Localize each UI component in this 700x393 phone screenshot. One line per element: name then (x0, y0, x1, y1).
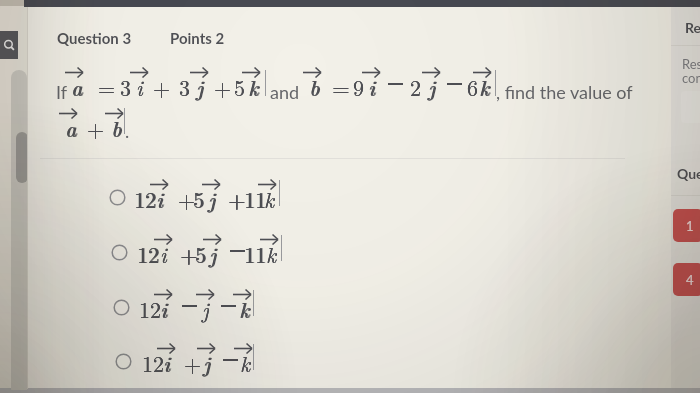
staticText: j (197, 71, 204, 102)
staticText: k (239, 293, 250, 324)
staticText: = (333, 71, 351, 102)
staticText: 11 (244, 238, 267, 269)
staticText: i (160, 293, 167, 324)
staticText: j (202, 293, 209, 324)
staticText: k (266, 238, 277, 269)
staticText: k (264, 183, 275, 214)
staticText: + (228, 183, 246, 214)
button[interactable] (111, 345, 267, 377)
staticText: a (65, 112, 77, 143)
staticText: 12 (142, 347, 165, 378)
staticText: 5 (234, 71, 246, 102)
staticText: a (71, 71, 83, 102)
staticText: 5 (234, 71, 246, 102)
staticText: b (309, 71, 320, 102)
staticText: 6 (467, 71, 479, 102)
staticText: + (214, 71, 232, 102)
staticText: j (210, 238, 217, 269)
staticText: b (310, 71, 321, 102)
staticText: 6 (467, 71, 479, 102)
staticText: a (65, 112, 77, 143)
staticText: 12 (137, 238, 160, 269)
staticText: 12 (135, 183, 158, 214)
staticText: a (72, 71, 84, 102)
staticText: 12 (139, 293, 162, 324)
staticText: j (209, 238, 216, 269)
staticText: k (479, 71, 490, 102)
staticText: i (163, 347, 170, 378)
staticText: j (203, 347, 210, 378)
staticText: = (98, 71, 116, 102)
button[interactable]: Search (0, 31, 18, 59)
staticText: Que (677, 165, 700, 182)
staticText: k (264, 183, 275, 214)
staticText: Question 3 (57, 29, 132, 47)
staticText: + (214, 71, 232, 102)
staticText: + (153, 71, 171, 102)
staticText: + (87, 112, 105, 143)
staticText: i (156, 183, 163, 214)
staticText: 4 (686, 272, 694, 288)
staticText: + (178, 183, 196, 214)
staticText: j (196, 71, 203, 102)
staticText: 9 (353, 71, 365, 102)
staticText: b (112, 112, 123, 143)
staticText: i (157, 183, 164, 214)
staticText: 2 (410, 71, 422, 102)
staticText: 2 (410, 71, 422, 102)
staticText: 11 (244, 183, 267, 214)
staticText: k (249, 71, 260, 102)
staticText: 2 (410, 71, 422, 102)
staticText: = (98, 71, 116, 102)
staticText: + (228, 183, 246, 214)
staticText: i (368, 71, 375, 102)
staticText: + (87, 112, 105, 143)
button[interactable]: 4 (673, 263, 700, 296)
staticText: 9 (353, 71, 365, 102)
staticText: + (181, 238, 199, 269)
staticText: + (180, 238, 198, 269)
staticText: + (153, 71, 171, 102)
staticText: j (202, 293, 209, 324)
staticText: , find the value of (496, 81, 633, 103)
button[interactable] (109, 291, 267, 323)
staticText: k (248, 71, 259, 102)
staticText: Points 2 (170, 29, 225, 47)
staticText: + (180, 238, 198, 269)
staticText: 12 (138, 238, 161, 269)
staticText: i (164, 347, 171, 378)
staticText: a (71, 71, 83, 102)
staticText: b (111, 112, 122, 143)
staticText: 11 (244, 238, 267, 269)
staticText: k (266, 238, 277, 269)
button[interactable]: 1 (673, 209, 700, 242)
staticText: 12 (139, 293, 162, 324)
staticText: j (208, 183, 215, 214)
staticText: + (178, 183, 196, 214)
staticText: 12 (137, 238, 160, 269)
staticText: 3 (179, 71, 191, 102)
staticText: k (479, 71, 490, 102)
staticText: a (66, 112, 78, 143)
button[interactable] (105, 181, 293, 213)
staticText: + (184, 347, 202, 378)
staticText: i (163, 347, 170, 378)
staticText: k (248, 71, 259, 102)
staticText: b (111, 112, 122, 143)
staticText: + (229, 183, 247, 214)
staticText: 5 (234, 71, 246, 102)
staticText: 3 (120, 71, 132, 102)
staticText: i (160, 293, 167, 324)
staticText: + (214, 71, 232, 102)
staticText: j (196, 71, 203, 102)
staticText: j (203, 347, 210, 378)
staticText: j (204, 347, 211, 378)
staticText: j (208, 183, 215, 214)
staticText: 11 (245, 238, 268, 269)
staticText: 12 (139, 293, 162, 324)
staticText: k (240, 293, 251, 324)
staticText: i (136, 71, 143, 102)
staticText: k (480, 71, 491, 102)
staticText: j (209, 238, 216, 269)
button[interactable] (107, 236, 295, 268)
